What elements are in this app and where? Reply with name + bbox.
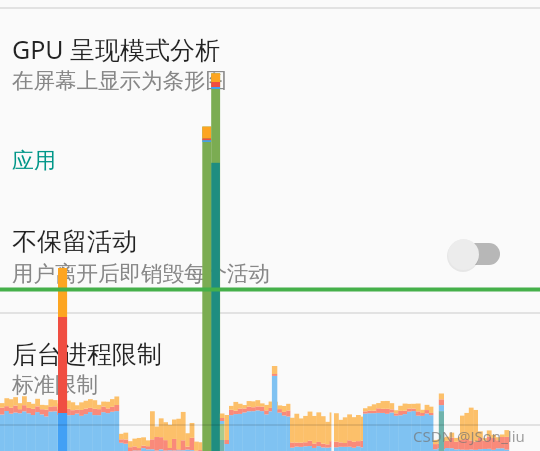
staticText: 在屏幕上显示为条形图: [12, 67, 227, 94]
staticText: 用户离开后即销毁每个活动: [12, 260, 270, 287]
button[interactable]: 后台进程限制: [0, 313, 540, 425]
staticText: GPU 呈现模式分析: [12, 32, 221, 66]
staticText: 应用: [12, 147, 56, 175]
staticText: 不保留活动: [12, 226, 137, 257]
staticText: 标准限制: [12, 371, 98, 398]
staticText: 后台进程限制: [12, 339, 162, 370]
button[interactable]: GPU 呈现模式分析: [0, 9, 540, 110]
button[interactable]: 不保留活动: [0, 200, 540, 311]
other: 不保留活动 开关: [440, 231, 510, 279]
staticText: CSDN @JSon_liu: [413, 426, 525, 446]
